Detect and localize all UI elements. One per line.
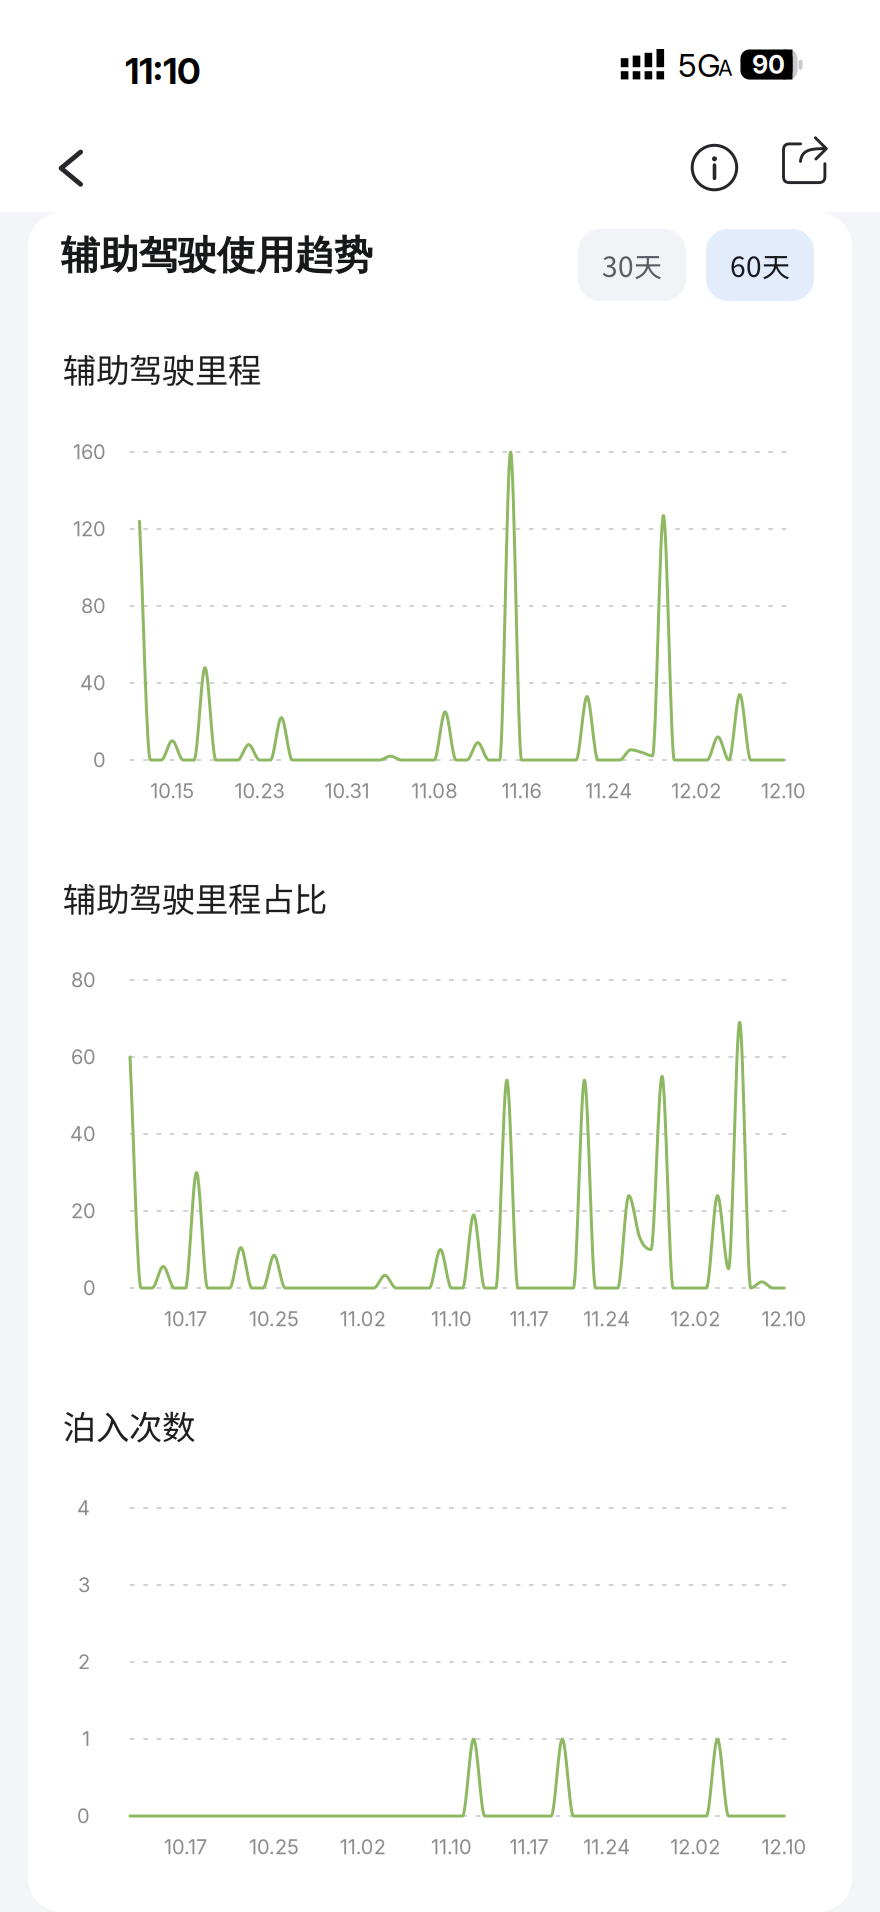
staticText: 12.10: [761, 1307, 806, 1331]
staticText: 10.15: [150, 779, 194, 803]
staticText: 11.24: [583, 1835, 630, 1859]
staticText: 11:10: [125, 49, 201, 93]
staticText: 11.02: [340, 1307, 386, 1331]
staticText: 11.16: [501, 779, 541, 803]
staticText: 12.02: [671, 779, 721, 803]
staticText: 12.10: [761, 779, 806, 803]
button[interactable]: Information: [676, 123, 752, 199]
staticText: 80: [81, 594, 106, 618]
staticText: 10.31: [324, 779, 369, 803]
staticText: 11.24: [585, 779, 632, 803]
staticText: 40: [70, 1122, 96, 1146]
staticText: 60: [71, 1045, 96, 1069]
button[interactable]: Share: [769, 124, 845, 200]
staticText: 辅助驾驶使用趋势: [61, 231, 373, 280]
button[interactable]: Back: [33, 122, 109, 198]
button[interactable]: 30天: [578, 229, 686, 301]
staticText: 80: [71, 968, 96, 992]
staticText: 4: [77, 1496, 90, 1520]
staticText: 120: [73, 517, 106, 541]
staticText: 0: [77, 1804, 90, 1828]
staticText: 1: [82, 1727, 90, 1751]
staticText: 0: [93, 748, 106, 772]
staticText: 2: [78, 1650, 90, 1674]
staticText: 泊入次数: [63, 1401, 195, 1449]
staticText: 11.08: [411, 779, 457, 803]
staticText: 20: [71, 1199, 96, 1223]
staticText: 5G: [678, 46, 721, 85]
staticText: 10.17: [164, 1307, 207, 1331]
staticText: 11.17: [510, 1835, 549, 1859]
staticText: 60天: [730, 245, 790, 285]
staticText: 10.17: [164, 1835, 207, 1859]
staticText: 10.23: [235, 779, 285, 803]
staticText: 10.25: [249, 1307, 299, 1331]
staticText: 11.17: [510, 1307, 549, 1331]
staticText: 30天: [602, 245, 662, 285]
staticText: 11.10: [431, 1835, 472, 1859]
staticText: 40: [80, 671, 106, 695]
staticText: 辅助驾驶里程: [63, 344, 261, 392]
staticText: 11.24: [583, 1307, 630, 1331]
staticText: 12.10: [761, 1835, 806, 1859]
staticText: 160: [73, 440, 106, 464]
staticText: 90: [752, 49, 785, 80]
staticText: 0: [83, 1276, 96, 1300]
staticText: 12.02: [670, 1307, 720, 1331]
staticText: 11.02: [340, 1835, 386, 1859]
staticText: 11.10: [431, 1307, 472, 1331]
staticText: 辅助驾驶里程占比: [63, 873, 327, 921]
staticText: A: [718, 55, 733, 81]
staticText: 12.02: [670, 1835, 720, 1859]
staticText: 3: [78, 1573, 90, 1597]
staticText: 10.25: [249, 1835, 299, 1859]
button[interactable]: 60天: [706, 229, 814, 301]
